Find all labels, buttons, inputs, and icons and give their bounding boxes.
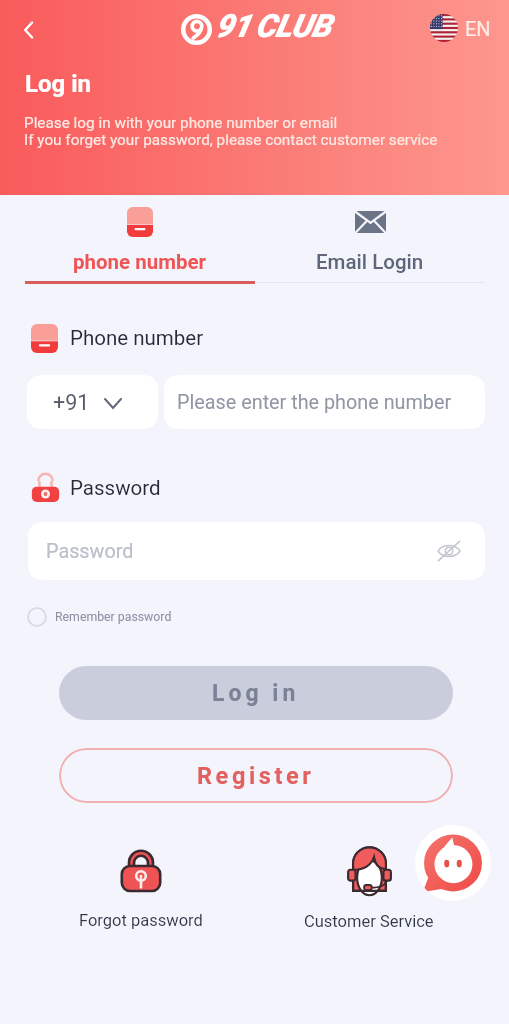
button[interactable]: Email Login [255,195,485,285]
button[interactable]: Password [28,522,485,580]
staticText: Log in [212,680,300,707]
staticText: If you forget your password, please cont… [24,131,438,149]
staticText: Register [197,762,315,790]
staticText: Forgot password [79,911,203,930]
staticText: CLUB [255,7,331,45]
button[interactable]: Log in [59,666,453,720]
button[interactable]: Register [59,748,453,803]
staticText: EN [465,17,491,40]
button[interactable]: Please enter the phone number [164,375,485,429]
button[interactable]: Language English [430,14,491,42]
staticText: 91 [215,7,250,45]
staticText: Please log in with your phone number or … [24,114,338,132]
button[interactable]: +91 [27,375,158,429]
staticText: Please enter the phone number [177,391,452,414]
button[interactable]: Show password [433,535,465,567]
button[interactable]: Customer Service [279,845,459,931]
staticText: Email Login [316,250,424,274]
button[interactable]: Forgot password [51,845,231,930]
button[interactable]: Live chat support [415,825,491,901]
button[interactable]: Remember password [27,607,172,627]
staticText: Log in [25,70,92,98]
button[interactable]: Back [8,9,50,51]
staticText: Remember password [55,610,172,624]
button[interactable]: phone number [25,195,255,285]
staticText: phone number [73,250,207,274]
staticText: Phone number [70,326,204,350]
staticText: +91 [53,390,90,415]
staticText: Password [70,476,161,500]
staticText: Password [46,540,134,563]
staticText: Customer Service [304,912,434,931]
